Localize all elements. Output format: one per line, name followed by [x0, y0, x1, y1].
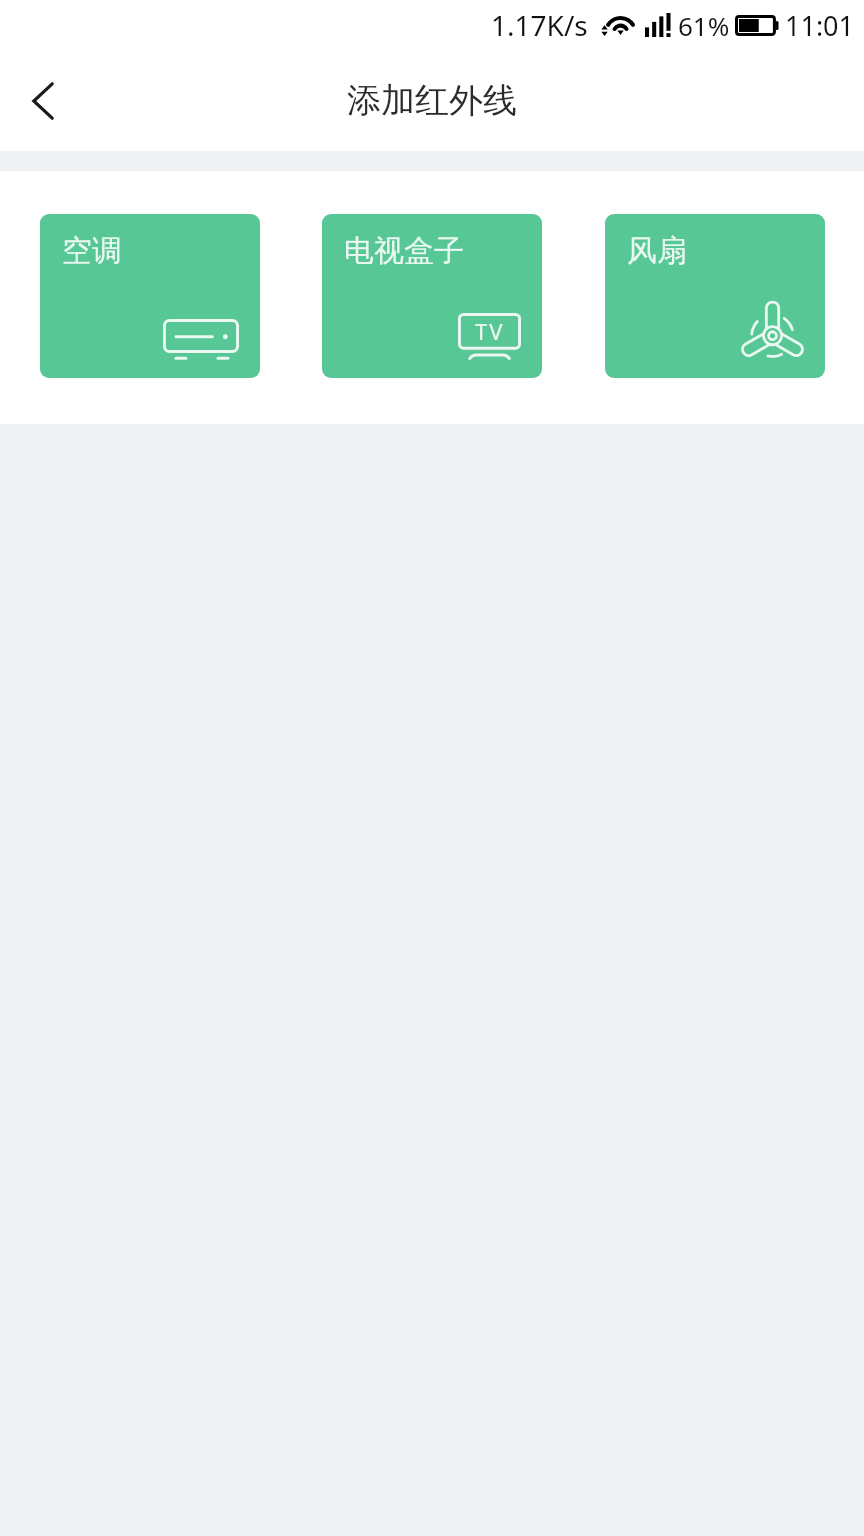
staticText: 空调 [62, 232, 122, 270]
staticText: 风扇 [627, 232, 687, 270]
staticText: 电视盒子 [344, 232, 464, 270]
button[interactable]: Back [0, 56, 84, 146]
button[interactable]: 空调 [40, 214, 260, 378]
button[interactable]: 风扇 [605, 214, 825, 378]
staticText: 11:01 [785, 7, 855, 44]
staticText: TV [475, 316, 505, 346]
staticText: 1.17K/s [491, 6, 588, 44]
staticText: 添加红外线 [347, 79, 517, 122]
staticText: 61% [678, 8, 730, 43]
button[interactable]: 电视盒子 [322, 214, 542, 378]
